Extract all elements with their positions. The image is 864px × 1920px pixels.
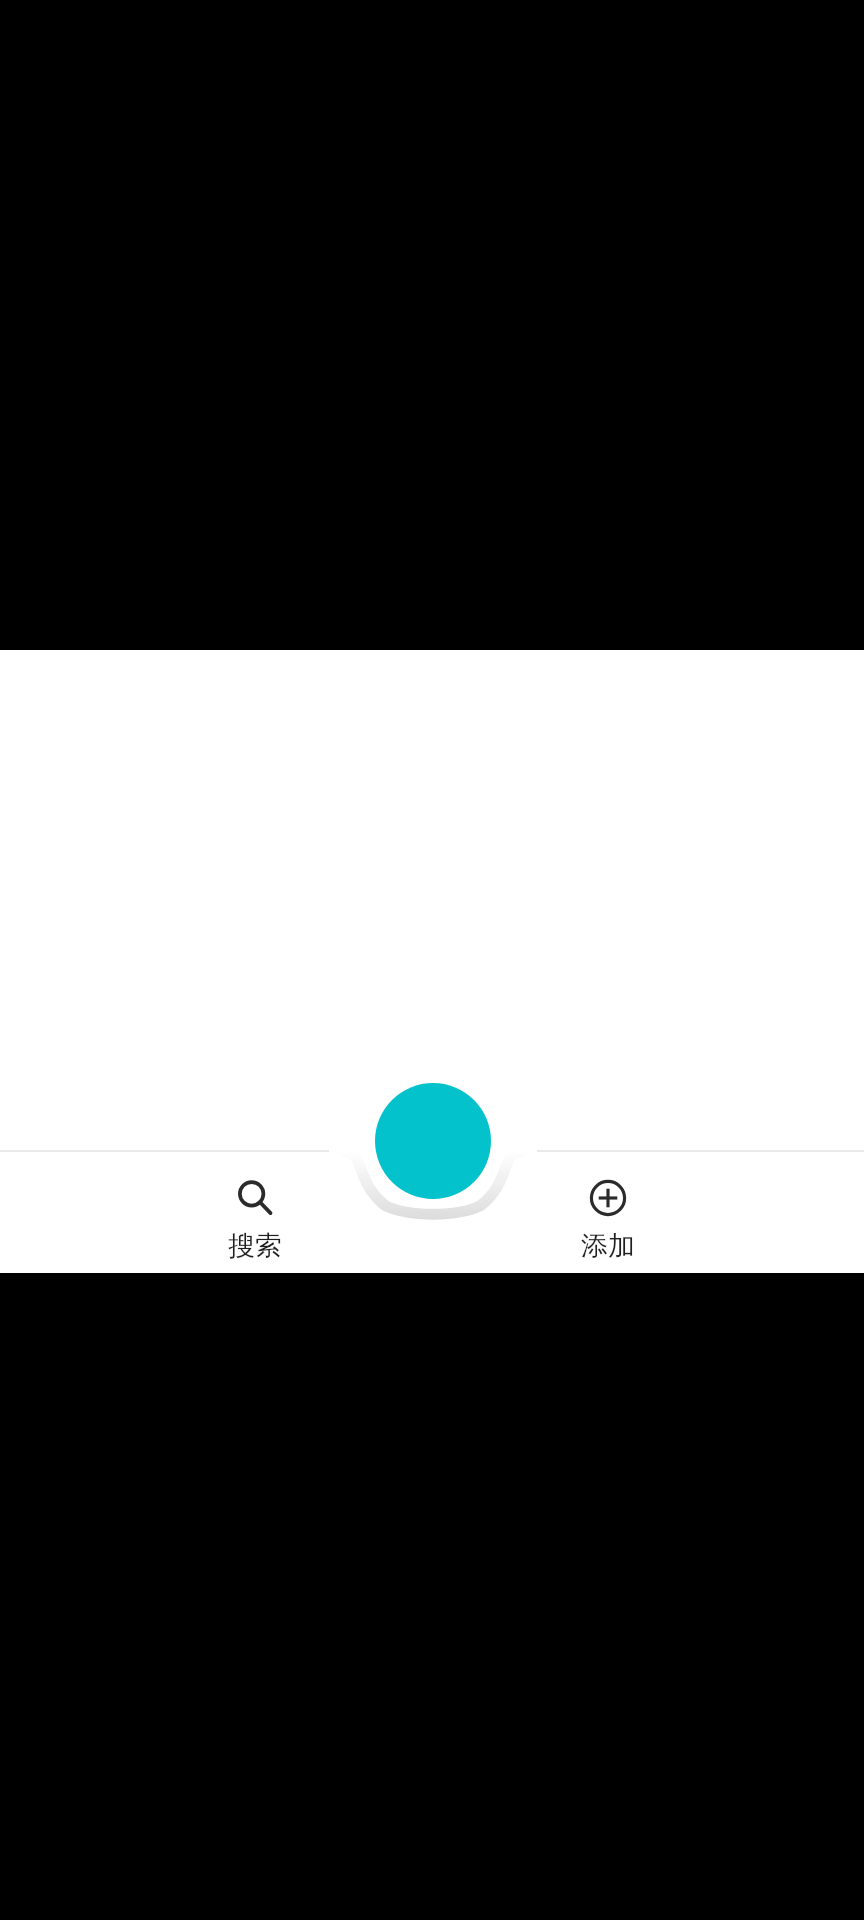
button[interactable]: 添加内容 — [375, 1083, 491, 1199]
button[interactable]: 添加 — [518, 1177, 698, 1285]
staticText: 添加 — [581, 1229, 635, 1263]
button[interactable]: 搜索 — [165, 1177, 345, 1285]
staticText: 搜索 — [228, 1229, 282, 1263]
